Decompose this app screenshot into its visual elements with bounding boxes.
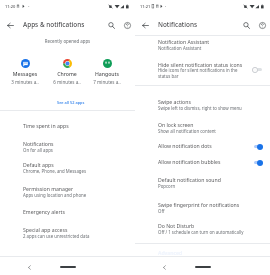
staticText: 6 minutes a..: [46, 79, 88, 85]
button[interactable]: Hangouts: [86, 56, 128, 78]
staticText: Notifications: [158, 20, 198, 29]
button[interactable]: Home: [60, 266, 76, 268]
staticText: Swipe left to dismiss, right to show men…: [158, 105, 242, 111]
staticText: Allow notification dots: [158, 142, 212, 149]
button[interactable]: Do Not Disturb: [135, 218, 270, 234]
button[interactable]: Notification Assistant: [135, 34, 270, 50]
staticText: Permission manager: [23, 185, 74, 192]
button[interactable]: Back: [23, 261, 35, 273]
button[interactable]: Special app access: [0, 222, 135, 238]
staticText: Hide icons for silent notifications in t…: [158, 67, 244, 79]
staticText: Emergency alerts: [23, 208, 65, 215]
staticText: Do Not Disturb: [158, 222, 195, 229]
staticText: Chrome: [46, 70, 88, 77]
button[interactable]: On: [252, 142, 265, 152]
button[interactable]: Messages: [4, 56, 46, 78]
staticText: Notifications: [23, 140, 54, 147]
button[interactable]: Permission manager: [0, 181, 135, 197]
staticText: Hide silent notification status icons: [158, 61, 243, 68]
button[interactable]: Swipe actions: [135, 94, 270, 110]
staticText: Apps & notifications: [23, 20, 85, 29]
button[interactable]: Swipe fingerprint for notifications: [135, 197, 270, 213]
button[interactable]: Back: [158, 261, 170, 273]
button[interactable]: Notifications: [0, 136, 135, 152]
staticText: Recently opened apps: [0, 38, 135, 44]
button[interactable]: Search: [103, 15, 119, 35]
staticText: See all 52 apps: [57, 100, 85, 105]
button[interactable]: Off: [251, 65, 264, 75]
staticText: 3 minutes a..: [4, 79, 46, 85]
button[interactable]: Navigate up: [137, 15, 153, 35]
button[interactable]: On lock screen: [135, 117, 270, 133]
staticText: Default notification sound: [158, 176, 221, 183]
staticText: On lock screen: [158, 121, 194, 128]
staticText: Popcorn: [158, 183, 176, 189]
staticText: Default apps: [23, 161, 54, 168]
staticText: Notification Assistant: [158, 45, 202, 51]
button[interactable]: See all 52 apps: [0, 96, 135, 108]
button[interactable]: Home: [195, 266, 211, 268]
staticText: 7 minutes a..: [86, 79, 128, 85]
staticText: Hangouts: [86, 70, 128, 77]
button[interactable]: Time spent in apps: [0, 118, 135, 134]
button[interactable]: Allow notification dots: [135, 138, 270, 154]
staticText: Notification Assistant: [158, 38, 210, 45]
button[interactable]: Help and feedback: [119, 15, 135, 35]
button[interactable]: Allow notification bubbles: [135, 154, 270, 170]
staticText: Allow notification bubbles: [158, 158, 221, 165]
button[interactable]: Chrome: [46, 56, 88, 78]
staticText: 11:21: [140, 4, 151, 9]
button[interactable]: Help and feedback: [254, 15, 270, 35]
button[interactable]: Search: [238, 15, 254, 35]
button[interactable]: On: [252, 158, 265, 168]
staticText: 11:20: [5, 4, 16, 9]
button[interactable]: Hide silent notification status icons: [135, 60, 270, 82]
staticText: Apps using location and phone: [23, 192, 87, 198]
staticText: Off: [158, 208, 165, 214]
button[interactable]: Default apps: [0, 157, 135, 173]
button[interactable]: Navigate up: [2, 15, 18, 35]
staticText: Swipe actions: [158, 98, 191, 105]
staticText: Messages: [4, 70, 46, 77]
staticText: Off / 1 schedule can turn on automatical…: [158, 229, 244, 235]
staticText: Advanced: [158, 249, 183, 256]
staticText: Show all notification content: [158, 128, 216, 134]
staticText: Swipe fingerprint for notifications: [158, 201, 240, 208]
button[interactable]: Default notification sound: [135, 172, 270, 189]
staticText: Special app access: [23, 226, 68, 233]
button[interactable]: Emergency alerts: [0, 204, 135, 220]
staticText: Time spent in apps: [23, 122, 69, 129]
staticText: On for all apps: [23, 147, 53, 153]
staticText: 2 apps can use unrestricted data: [23, 233, 90, 239]
staticText: Chrome, Phone, and Messages: [23, 168, 87, 174]
